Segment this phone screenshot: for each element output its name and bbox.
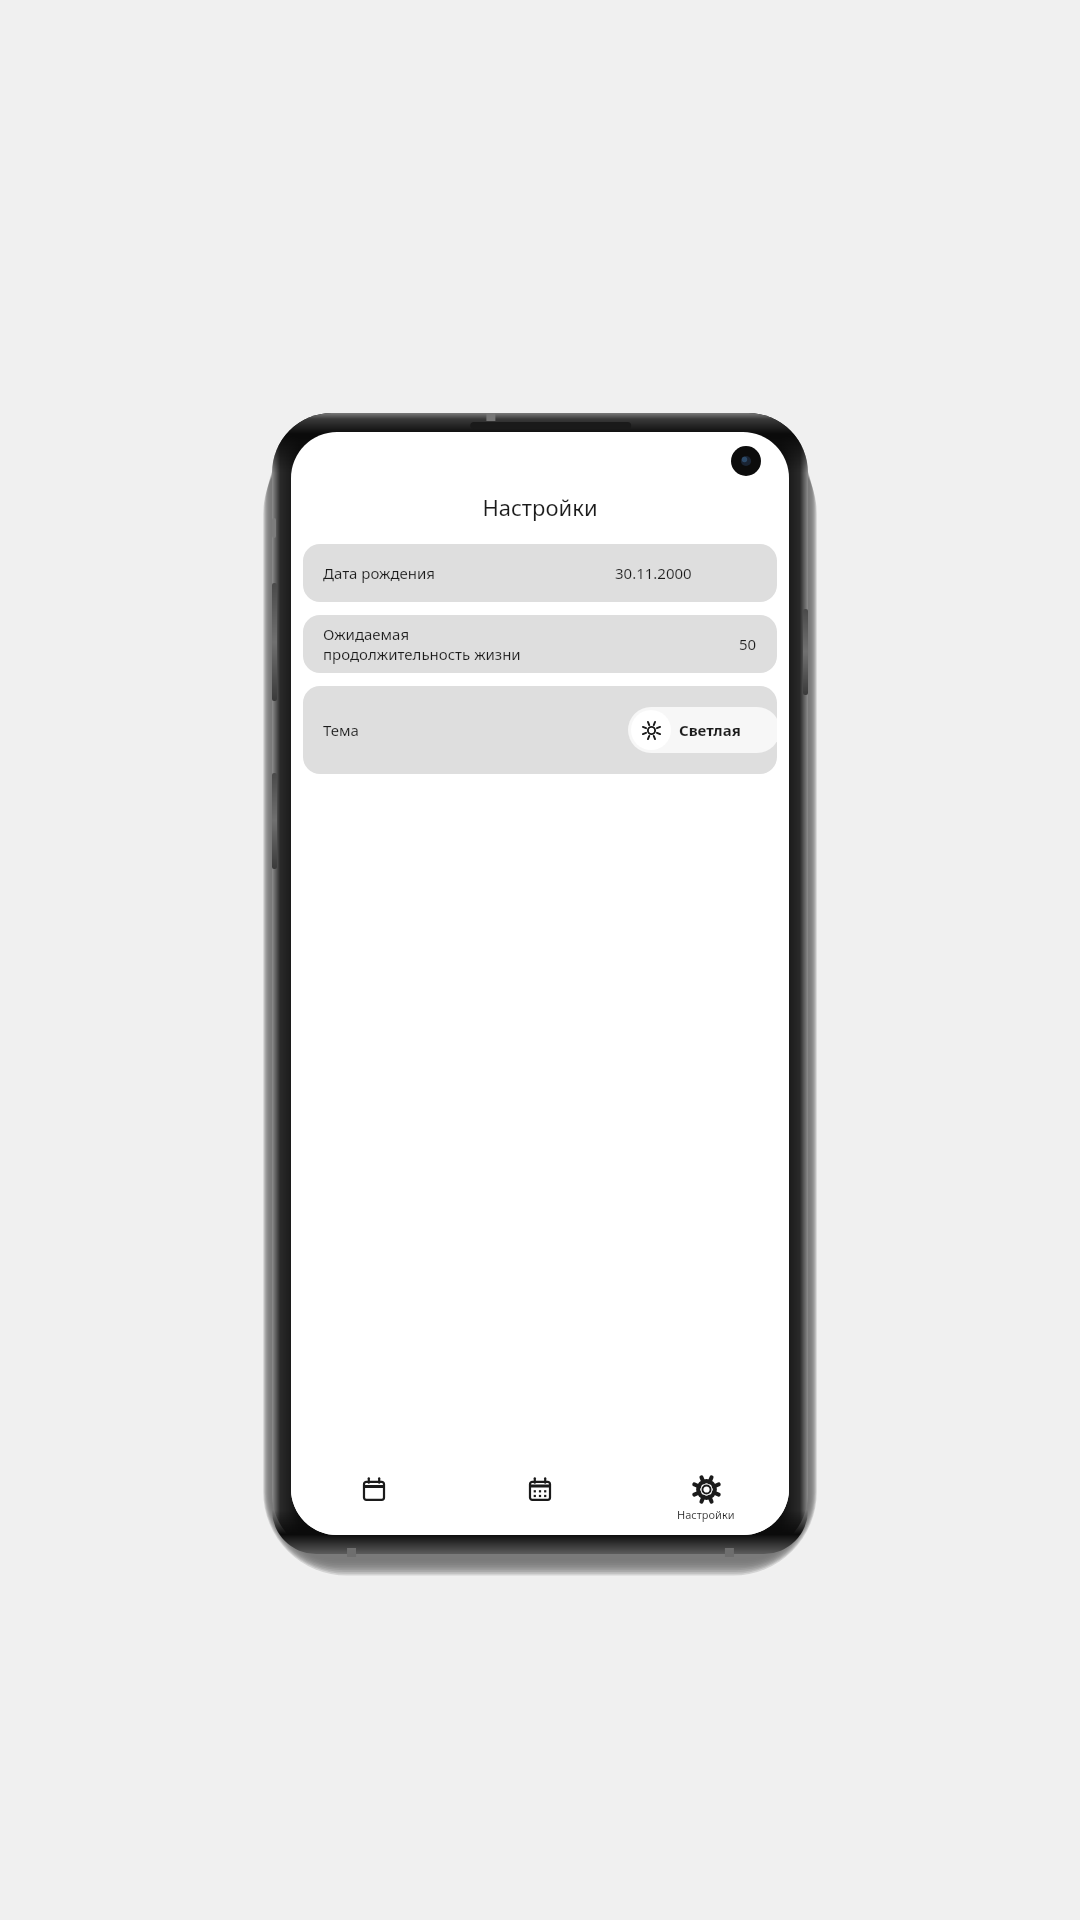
button[interactable]: Месяц [457, 1463, 623, 1535]
button[interactable]: Ожидаемая продолжительность жизни [303, 615, 777, 673]
staticText: Светлая [679, 720, 741, 740]
staticText: Тема [323, 720, 359, 740]
staticText: 50 [739, 634, 757, 654]
button[interactable]: Календарь [291, 1463, 457, 1535]
button[interactable]: Переключить тему [628, 707, 777, 753]
staticText: 30.11.2000 [615, 563, 692, 583]
staticText: Дата рождения [323, 563, 436, 583]
staticText: Настройки [291, 492, 789, 522]
button[interactable]: Настройки [623, 1463, 789, 1535]
staticText: Настройки [677, 1507, 735, 1522]
staticText: Ожидаемая продолжительность жизни [323, 624, 531, 664]
button[interactable]: Дата рождения [303, 544, 777, 602]
